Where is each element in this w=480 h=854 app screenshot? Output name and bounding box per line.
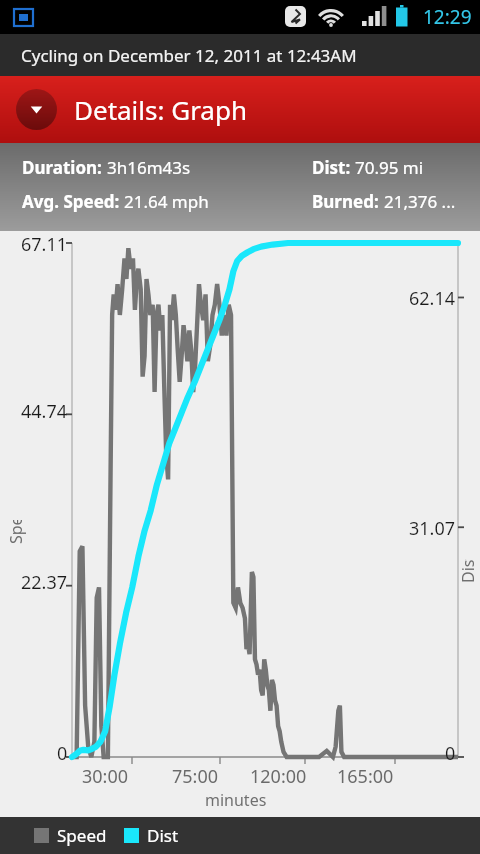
staticText: 0 xyxy=(445,741,456,766)
staticText: Avg. Speed: xyxy=(22,190,124,213)
staticText: 165:00 xyxy=(337,764,394,789)
staticText: Dist xyxy=(147,824,179,847)
staticText: 75:00 xyxy=(172,764,219,789)
staticText: 70.95 mi xyxy=(355,156,424,179)
staticText: Speed xyxy=(57,824,107,847)
staticText: Burned: xyxy=(312,190,384,213)
staticText: 12:29 xyxy=(423,4,472,30)
staticText: 0 xyxy=(57,741,68,766)
staticText: 120:00 xyxy=(250,764,307,789)
staticText: Duration: xyxy=(22,156,107,179)
staticText: Dist: xyxy=(312,156,355,179)
staticText: 30:00 xyxy=(82,764,129,789)
other: Collapse details xyxy=(16,89,57,130)
staticText: Details: Graph xyxy=(74,92,248,127)
staticText: 21,376 ... xyxy=(384,190,456,213)
button[interactable]: Collapse details xyxy=(0,76,480,143)
staticText: 62.14 xyxy=(409,286,456,311)
staticText: 31.07 xyxy=(409,516,456,541)
staticText: 22.37 xyxy=(21,570,68,595)
staticText: Speed (mph) xyxy=(5,520,27,544)
staticText: minutes xyxy=(205,789,267,811)
staticText: Dist (mi) xyxy=(457,559,479,583)
staticText: 44.74 xyxy=(21,399,68,424)
staticText: 67.11 xyxy=(21,232,68,257)
staticText: Cycling on December 12, 2011 at 12:43AM xyxy=(21,44,357,67)
staticText: 21.64 mph xyxy=(124,190,209,213)
staticText: 3h16m43s xyxy=(107,156,191,179)
